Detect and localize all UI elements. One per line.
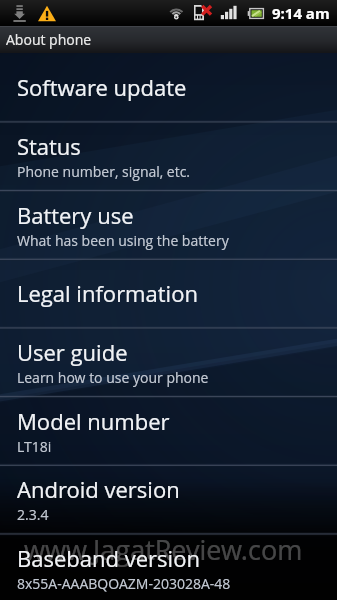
staticText: Battery use: [17, 200, 134, 230]
button[interactable]: Status: [0, 121, 337, 190]
staticText: www.JagatReview.com: [24, 531, 303, 568]
staticText: 2.3.4: [17, 505, 49, 524]
staticText: User guide: [17, 337, 128, 367]
staticText: Phone number, signal, etc.: [17, 162, 191, 181]
staticText: Legal information: [17, 278, 198, 308]
staticText: LT18i: [17, 437, 52, 456]
staticText: About phone: [6, 30, 92, 49]
button[interactable]: Android version: [0, 464, 337, 533]
button[interactable]: Software update: [0, 52, 337, 121]
staticText: Software update: [17, 72, 187, 102]
staticText: Baseband version: [17, 543, 200, 573]
staticText: Model number: [17, 406, 170, 436]
button[interactable]: Model number: [0, 396, 337, 465]
staticText: Android version: [17, 474, 180, 504]
button[interactable]: User guide: [0, 327, 337, 396]
staticText: Learn how to use your phone: [17, 368, 209, 387]
staticText: 8x55A-AAABQOAZM-203028A-48: [17, 574, 231, 593]
staticText: 9:14 am: [272, 3, 330, 23]
staticText: What has been using the battery: [17, 231, 229, 250]
button[interactable]: Baseband version: [0, 533, 337, 600]
button[interactable]: Battery use: [0, 190, 337, 259]
staticText: Status: [17, 131, 81, 161]
button[interactable]: Legal information: [0, 258, 337, 327]
